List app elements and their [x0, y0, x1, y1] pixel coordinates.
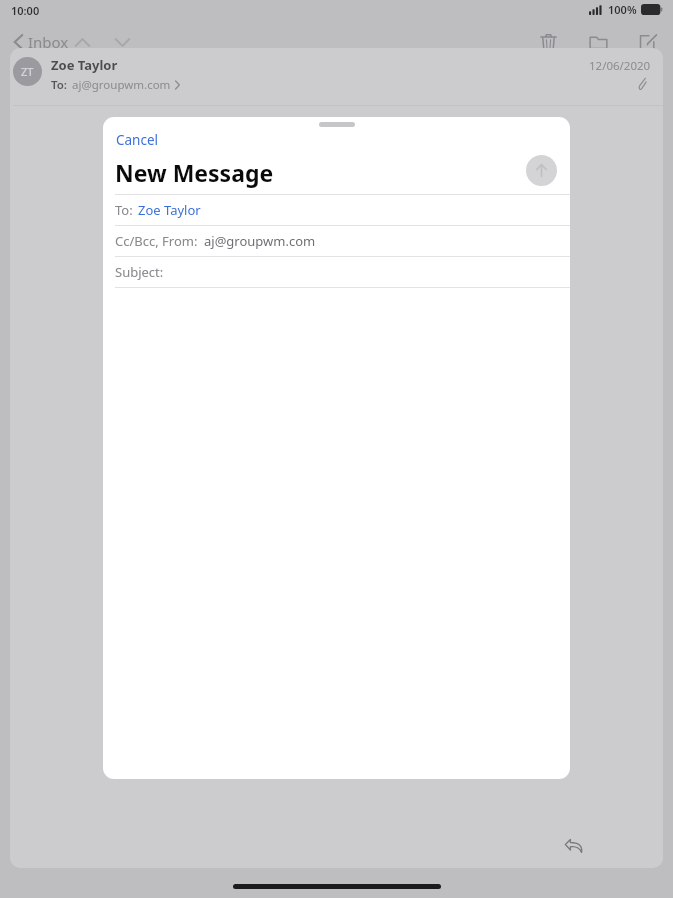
button[interactable]: Move to folder [583, 27, 613, 57]
staticText: 10:00 [11, 3, 40, 18]
other: Attachment [635, 76, 651, 92]
button[interactable]: Reply [557, 828, 591, 862]
staticText: New Message [115, 157, 274, 188]
staticText: Cancel [116, 131, 159, 149]
staticText: Zoe Taylor [51, 56, 118, 74]
staticText: ZT [21, 64, 34, 79]
staticText: Zoe Taylor [138, 201, 201, 219]
button[interactable]: Cancel [107, 127, 168, 153]
staticText: 12/06/2020 [589, 58, 651, 74]
button[interactable]: Subject: [103, 257, 570, 287]
button[interactable]: To: [103, 195, 570, 225]
staticText: Subject: [115, 263, 164, 281]
button[interactable]: Next message [108, 28, 136, 56]
button[interactable]: Cc/Bcc, From: [103, 226, 570, 256]
staticText: Inbox [28, 32, 69, 52]
staticText: To: [115, 201, 133, 219]
staticText: 100% [608, 2, 637, 17]
staticText: To: [51, 77, 68, 93]
button[interactable]: Previous message [68, 28, 96, 56]
button[interactable]: Send [526, 155, 557, 186]
staticText: aj@groupwm.com [72, 77, 171, 93]
staticText: Cc/Bcc, From: [115, 232, 198, 250]
staticText: aj@groupwm.com [204, 232, 316, 250]
button[interactable]: Delete [533, 27, 563, 57]
button[interactable]: Inbox [10, 26, 73, 58]
button[interactable]: Compose [633, 27, 663, 57]
button[interactable]: Zoe Taylor avatar [13, 57, 42, 86]
